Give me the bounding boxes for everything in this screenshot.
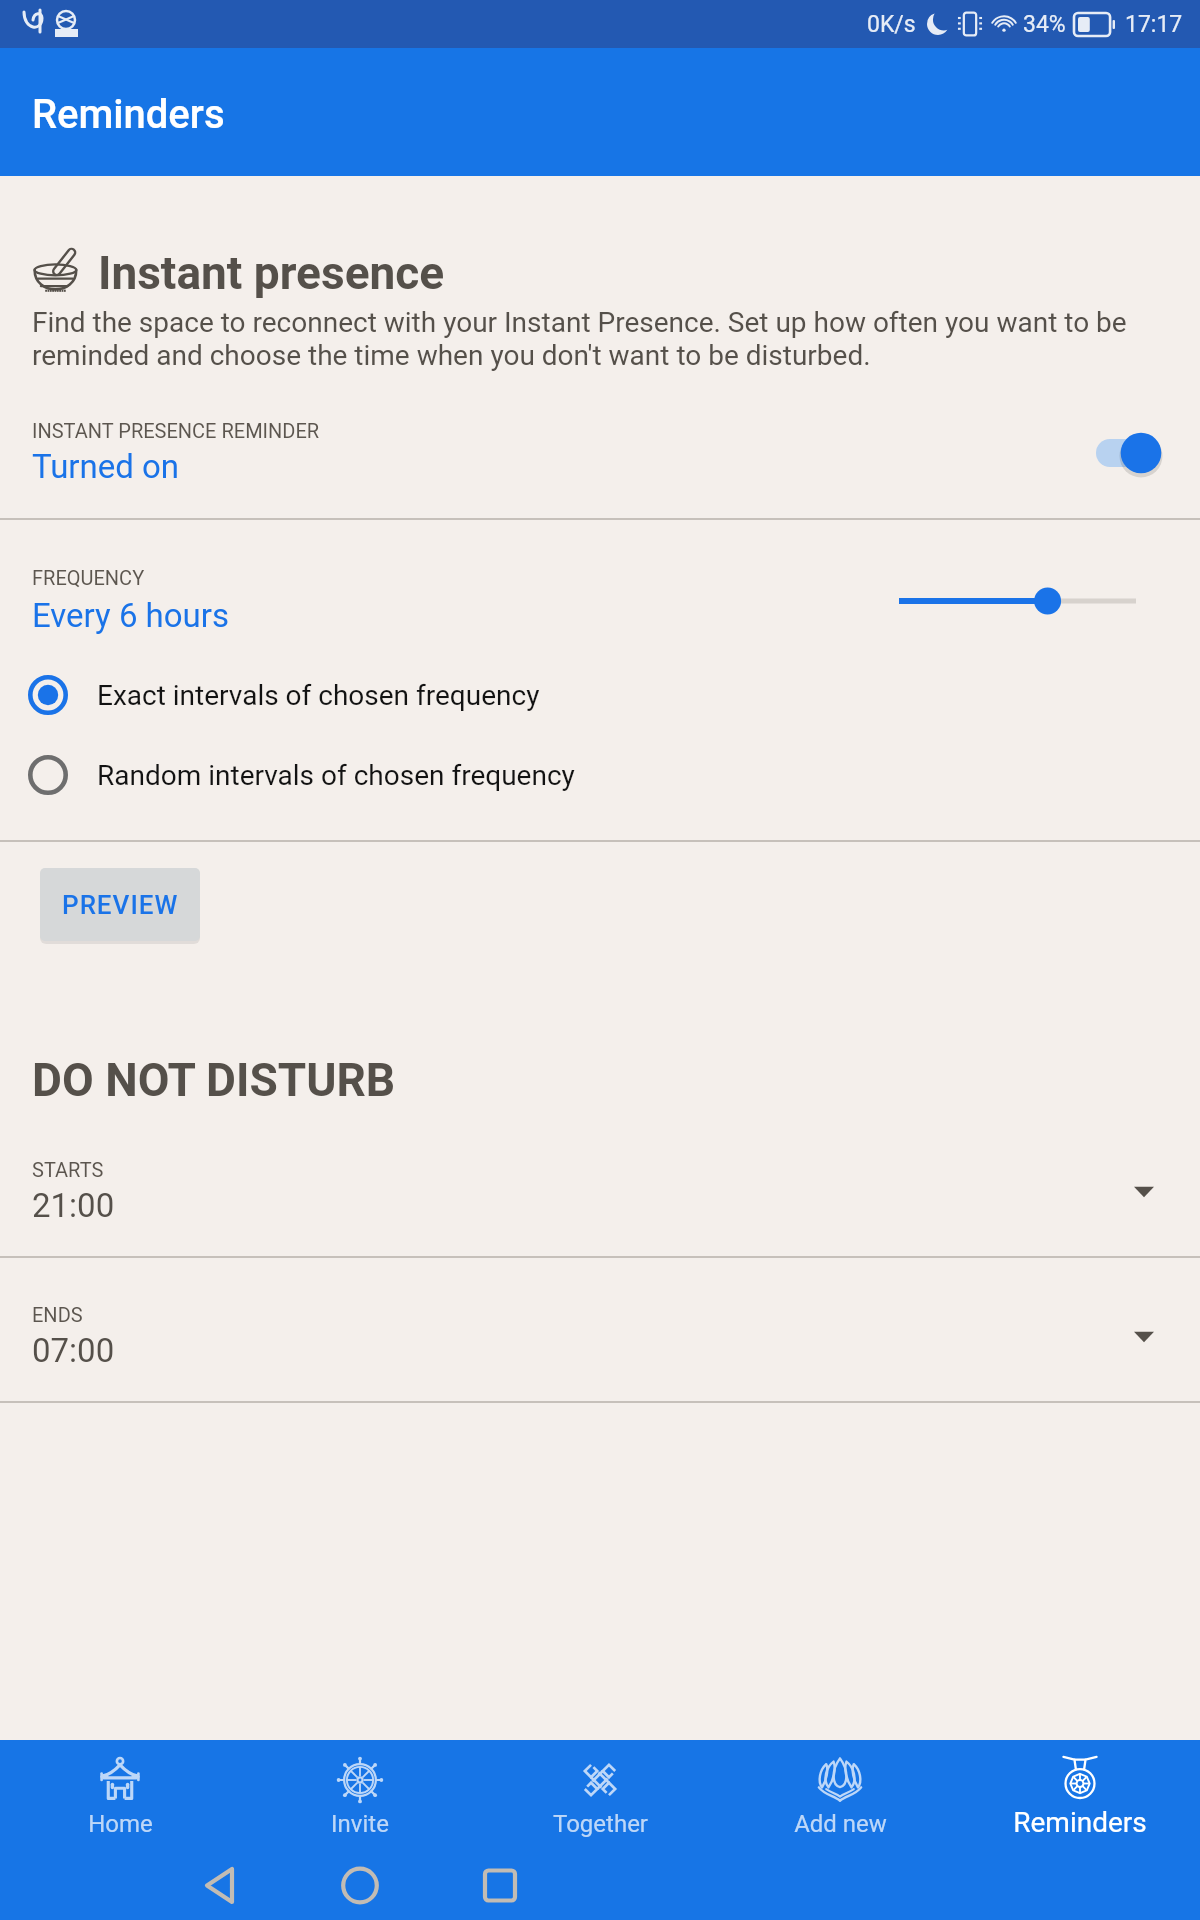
staticText: Together	[553, 1810, 648, 1838]
staticText: Reminders	[32, 91, 225, 138]
staticText: 0K/s	[867, 11, 916, 38]
staticText: Home	[88, 1810, 153, 1838]
staticText: Reminders	[1013, 1806, 1147, 1839]
staticText: Add new	[794, 1810, 887, 1838]
staticText: DO NOT DISTURB	[32, 1053, 396, 1107]
staticText: Invite	[331, 1810, 389, 1838]
button[interactable]: Add new	[720, 1740, 960, 1845]
staticText: FREQUENCY	[32, 566, 145, 589]
staticText: Turned on	[32, 447, 180, 486]
staticText: 21:00	[32, 1186, 115, 1225]
button[interactable]: Random intervals of chosen frequency	[0, 755, 1200, 795]
button[interactable]: Toggle reminder	[1096, 428, 1160, 478]
staticText: Instant presence	[98, 246, 445, 300]
staticText: 17:17	[1125, 11, 1183, 38]
staticText: INSTANT PRESENCE REMINDER	[32, 419, 320, 442]
staticText: 07:00	[32, 1331, 115, 1370]
staticText: ENDS	[32, 1303, 83, 1326]
staticText: PREVIEW	[62, 890, 179, 920]
other: Choose time	[1131, 1324, 1157, 1350]
staticText: Find the space to reconnect with your In…	[32, 306, 1167, 372]
button[interactable]: STARTS	[0, 1158, 1200, 1256]
button[interactable]: ENDS	[0, 1303, 1200, 1401]
staticText: Random intervals of chosen frequency	[97, 759, 575, 792]
other: Choose time	[1131, 1179, 1157, 1205]
staticText: Every 6 hours	[32, 596, 230, 635]
button[interactable]: Invite	[240, 1740, 480, 1845]
staticText: STARTS	[32, 1158, 104, 1181]
button[interactable]: Home	[320, 1845, 400, 1920]
button[interactable]: Back	[180, 1845, 260, 1920]
staticText: Exact intervals of chosen frequency	[97, 679, 540, 712]
button[interactable]: Recent apps	[460, 1845, 540, 1920]
button[interactable]: PREVIEW	[40, 868, 200, 941]
staticText: 34%	[1023, 11, 1066, 38]
button[interactable]: Exact intervals of chosen frequency	[0, 675, 1200, 715]
button[interactable]: Reminders	[960, 1740, 1200, 1845]
button[interactable]: Frequency slider	[899, 576, 1136, 626]
button[interactable]: INSTANT PRESENCE REMINDER	[0, 419, 1200, 486]
button[interactable]: Home	[0, 1740, 240, 1845]
button[interactable]: Together	[480, 1740, 720, 1845]
